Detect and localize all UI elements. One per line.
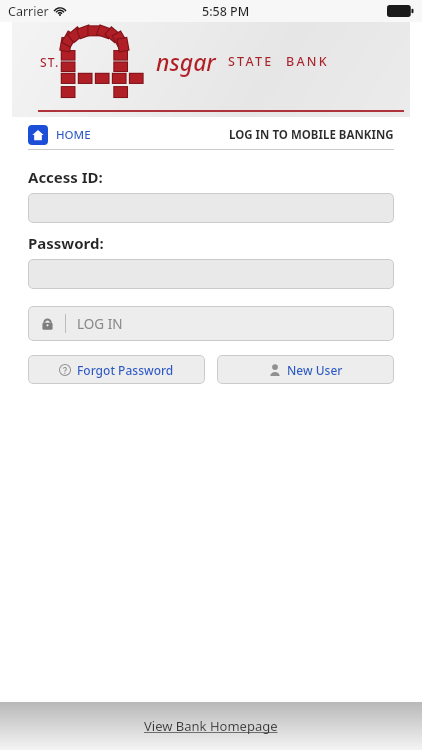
staticText: nsgar (156, 46, 216, 77)
button[interactable] (28, 259, 394, 289)
staticText: LOG IN (77, 315, 123, 333)
staticText: ST. (40, 54, 60, 70)
button[interactable]: LOG IN (28, 306, 394, 341)
button[interactable]: New User (217, 355, 394, 384)
button[interactable]: Forgot Password (28, 355, 205, 384)
button[interactable]: HOME (28, 125, 91, 145)
staticText: 5:58 PM (202, 3, 250, 20)
button[interactable]: View Bank Homepage (134, 711, 288, 741)
staticText: New User (287, 362, 343, 378)
staticText: HOME (56, 127, 91, 143)
staticText: Password: (28, 233, 104, 253)
staticText: Access ID: (28, 167, 103, 187)
staticText: Forgot Password (77, 362, 174, 378)
staticText: STATE (228, 53, 274, 70)
staticText: View Bank Homepage (144, 717, 278, 735)
staticText: LOG IN TO MOBILE BANKING (229, 127, 394, 143)
staticText: BANK (286, 53, 329, 70)
staticText: Carrier (8, 3, 49, 20)
button[interactable] (28, 193, 394, 223)
